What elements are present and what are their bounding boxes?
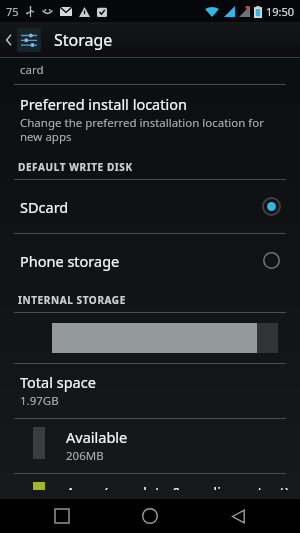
staticText: SDcard (20, 197, 263, 217)
staticText: INTERNAL STORAGE (18, 293, 126, 307)
staticText: 75 (6, 4, 19, 19)
staticText: Preferred install location (20, 94, 187, 114)
staticText: 19:50 (266, 4, 295, 19)
staticText: DEFAULT WRITE DISK (18, 160, 133, 174)
staticText: Storage (54, 29, 113, 51)
staticText: 1.97GB (20, 393, 59, 409)
staticText: Apps (app data & media content) (66, 482, 290, 490)
button[interactable]: Available (0, 419, 300, 473)
staticText: Phone storage (20, 251, 263, 271)
button[interactable]: Recent apps (36, 499, 88, 533)
button[interactable]: Total space (0, 364, 300, 418)
staticText: Total space (20, 372, 96, 392)
staticText: Change the preferred installation locati… (20, 115, 282, 144)
button[interactable]: Phone storage (0, 234, 300, 287)
button[interactable]: Apps (app data & media content) (0, 474, 300, 499)
button[interactable]: Home (124, 499, 176, 533)
button[interactable]: Back (212, 499, 264, 533)
staticText: 206MB (66, 448, 104, 464)
staticText: Available (66, 427, 128, 447)
staticText: card (20, 62, 44, 78)
button[interactable]: SDcard (0, 180, 300, 233)
button[interactable]: Navigate up (0, 22, 43, 57)
button[interactable]: Preferred install location (0, 85, 300, 154)
